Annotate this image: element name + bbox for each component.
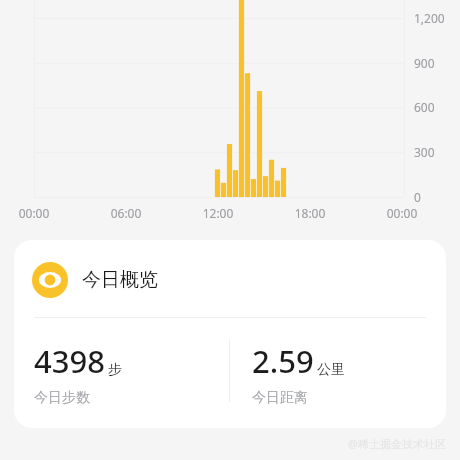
staticText: 18:00 bbox=[280, 205, 340, 221]
staticText: 300 bbox=[414, 144, 435, 160]
staticText: 今日距离 bbox=[252, 389, 308, 407]
staticText: 公里 bbox=[317, 361, 345, 379]
button[interactable]: Today overview bbox=[14, 240, 446, 428]
staticText: 0 bbox=[414, 189, 421, 205]
staticText: 600 bbox=[414, 99, 435, 115]
staticText: 12:00 bbox=[188, 205, 248, 221]
staticText: 2.59 bbox=[252, 340, 314, 382]
staticText: 今日步数 bbox=[34, 389, 90, 407]
staticText: @稀土掘金技术社区 bbox=[348, 436, 446, 451]
other: Today overview bbox=[32, 262, 68, 298]
button[interactable]: 4398 bbox=[34, 340, 229, 407]
staticText: 4398 bbox=[34, 340, 105, 382]
staticText: 900 bbox=[414, 55, 435, 71]
staticText: 00:00 bbox=[4, 205, 64, 221]
staticText: 步 bbox=[108, 361, 122, 379]
staticText: 00:00 bbox=[372, 205, 432, 221]
staticText: 今日概览 bbox=[82, 268, 158, 292]
staticText: 06:00 bbox=[96, 205, 156, 221]
button[interactable]: 2.59 bbox=[252, 340, 446, 407]
staticText: 1,200 bbox=[414, 10, 445, 26]
